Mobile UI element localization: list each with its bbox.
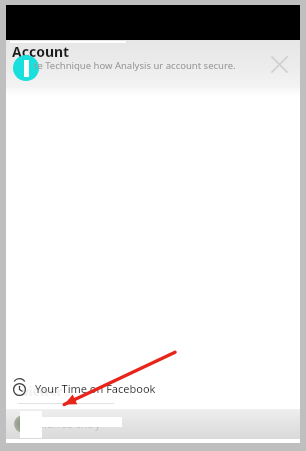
- staticText: Your Time on Facebook: [35, 381, 156, 396]
- staticText: blurred entry: [38, 417, 101, 431]
- staticText: viewer: [22, 383, 63, 399]
- button[interactable]: Your Time on Facebook: [6, 373, 300, 403]
- staticText: te Technique how Analysis ur account sec…: [34, 59, 247, 72]
- staticText: Account: [12, 42, 70, 61]
- button[interactable]: Close: [264, 49, 294, 79]
- button[interactable]: Profile picture: [13, 55, 39, 81]
- button[interactable]: blurred entry: [6, 409, 300, 439]
